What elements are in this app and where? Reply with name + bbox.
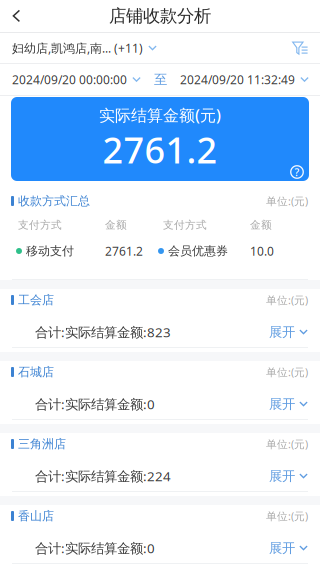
button[interactable]: 合计:实际结算金额:0 [0,533,320,563]
staticText: 单位:(元) [266,437,308,451]
staticText: 香山店 [18,509,54,523]
button[interactable]: 2024/09/20 11:32:49 [180,71,309,87]
button[interactable]: 2024/09/20 00:00:00 [12,71,141,87]
staticText: 移动支付 [26,244,74,258]
staticText: 石城店 [18,365,54,379]
staticText: 会员优惠券 [168,244,228,258]
staticText: 2024/09/20 00:00:00 [12,71,127,87]
staticText: 单位:(元) [266,194,308,208]
staticText: 2024/09/20 11:32:49 [180,71,295,87]
staticText: 合计:实际结算金额:224 [35,467,171,485]
staticText: 支付方式 [18,218,62,231]
staticText: 展开 [269,540,295,556]
button[interactable]: 合计:实际结算金额:823 [0,317,320,347]
staticText: 展开 [269,468,295,484]
staticText: 合计:实际结算金额:823 [35,323,171,341]
staticText: 合计:实际结算金额:0 [35,539,155,557]
staticText: 妇幼店,凯鸿店,南... (+11) [12,40,143,56]
staticText: 展开 [269,324,295,340]
staticText: 收款方式汇总 [18,194,90,208]
button[interactable]: 妇幼店,凯鸿店,南... (+11) [0,33,320,63]
staticText: 2761.2 [105,243,143,259]
staticText: 金额 [105,218,127,231]
button[interactable]: 合计:实际结算金额:224 [0,461,320,491]
staticText: 金额 [250,218,272,231]
staticText: 支付方式 [163,218,207,231]
staticText: 实际结算金额(元) [99,104,221,126]
staticText: 展开 [269,396,295,412]
staticText: 三角洲店 [18,437,66,451]
staticText: 工会店 [18,293,54,307]
staticText: 单位:(元) [266,509,308,523]
staticText: 10.0 [250,243,274,259]
button[interactable]: 合计:实际结算金额:0 [0,389,320,419]
button[interactable]: Help [290,165,304,179]
staticText: 店铺收款分析 [109,5,211,27]
staticText: 单位:(元) [266,365,308,379]
staticText: 单位:(元) [266,293,308,307]
staticText: 至 [154,71,167,88]
staticText: ? [294,165,299,179]
staticText: 2761.2 [102,126,217,173]
button[interactable]: Back [0,0,33,32]
staticText: 合计:实际结算金额:0 [35,395,155,413]
